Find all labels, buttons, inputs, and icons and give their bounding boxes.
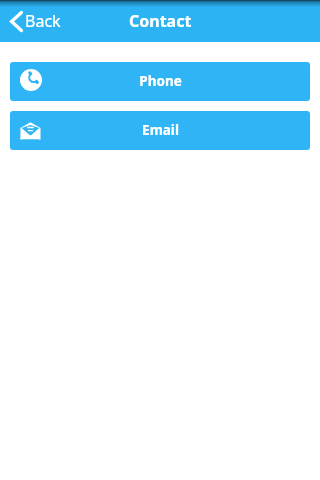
staticText: Back — [25, 10, 61, 32]
staticText: Contact — [129, 10, 192, 32]
button[interactable]: Phone — [10, 62, 310, 101]
button[interactable]: Back — [0, 10, 71, 32]
other: Back — [10, 11, 23, 32]
button[interactable]: Email — [10, 111, 310, 150]
staticText: Email — [142, 121, 179, 139]
staticText: Phone — [139, 72, 182, 90]
